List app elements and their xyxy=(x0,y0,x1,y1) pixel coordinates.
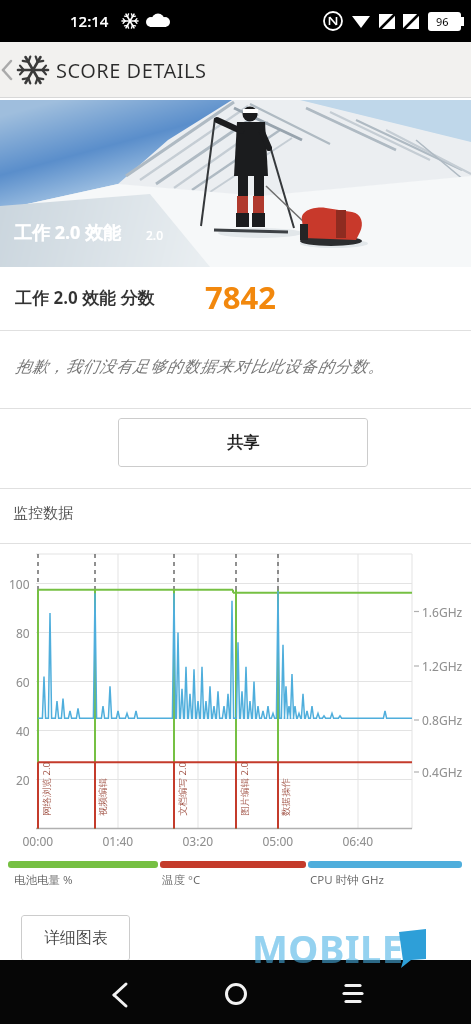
staticText: MOBILE xyxy=(252,922,404,974)
button[interactable] xyxy=(157,960,314,1024)
staticText: 电池电量 % xyxy=(14,872,73,888)
staticText: 详细图表 xyxy=(44,928,108,948)
staticText: 96 xyxy=(436,14,449,29)
staticText: 工作 2.0 效能 xyxy=(14,220,122,245)
staticText: 7842 xyxy=(205,276,276,318)
staticText: 2.0 xyxy=(146,227,163,243)
staticText: 工作 2.0 效能 分数 xyxy=(15,286,155,309)
button[interactable]: 详细图表 xyxy=(21,915,130,961)
button[interactable]: SCORE DETAILS xyxy=(0,42,471,98)
staticText: 监控数据 xyxy=(13,504,73,523)
staticText: 12:14 xyxy=(70,11,109,31)
staticText: 共享 xyxy=(227,433,259,453)
button[interactable] xyxy=(314,960,471,1024)
button[interactable] xyxy=(0,960,157,1024)
staticText: 抱歉，我们没有足够的数据来对比此设备的分数。 xyxy=(15,357,385,377)
button[interactable]: 共享 xyxy=(118,418,368,467)
staticText: CPU 时钟 GHz xyxy=(310,872,384,888)
staticText: 温度 °C xyxy=(162,872,201,888)
staticText: SCORE DETAILS xyxy=(56,57,207,84)
